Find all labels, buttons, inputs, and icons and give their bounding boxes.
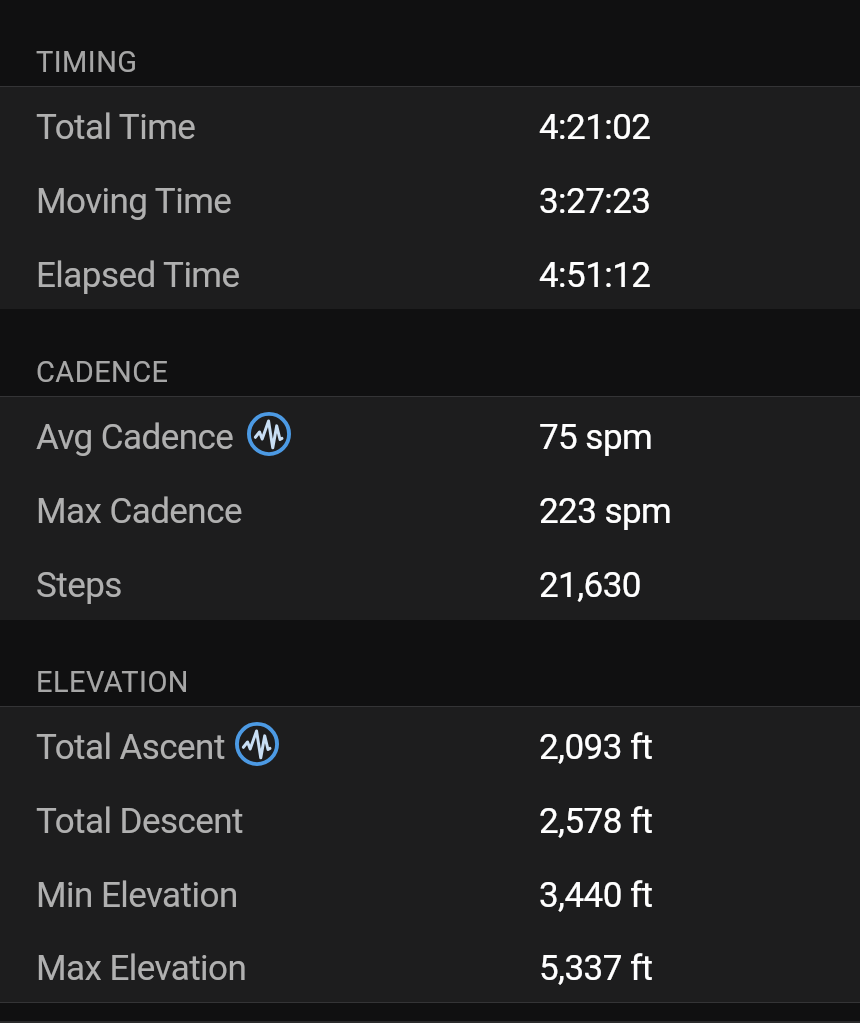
- staticText: Moving Time: [36, 181, 232, 222]
- staticText: 2,093 ft: [539, 727, 653, 768]
- staticText: CADENCE: [36, 355, 169, 389]
- staticText: Total Ascent: [36, 727, 225, 768]
- button[interactable]: Total Ascent: [0, 707, 860, 781]
- button[interactable]: Total Time: [0, 87, 860, 161]
- staticText: TIMING: [36, 45, 138, 79]
- staticText: ELEVATION: [36, 665, 189, 699]
- staticText: Max Elevation: [36, 948, 247, 989]
- staticText: 4:51:12: [539, 255, 651, 296]
- button[interactable]: Max Cadence: [0, 471, 860, 545]
- staticText: 21,630: [539, 565, 641, 606]
- staticText: 75 spm: [539, 417, 653, 458]
- button[interactable]: Min Elevation: [0, 855, 860, 929]
- staticText: 223 spm: [539, 491, 672, 532]
- staticText: Steps: [36, 565, 122, 606]
- staticText: 2,578 ft: [539, 801, 653, 842]
- staticText: 3,440 ft: [539, 875, 653, 916]
- button[interactable]: Steps: [0, 545, 860, 620]
- staticText: 4:21:02: [539, 107, 651, 148]
- other: Sensor data source: [247, 412, 291, 456]
- staticText: Elapsed Time: [36, 255, 240, 296]
- button[interactable]: Max Elevation: [0, 929, 860, 1002]
- staticText: 5,337 ft: [539, 948, 653, 989]
- staticText: Min Elevation: [36, 875, 238, 916]
- button[interactable]: Avg Cadence: [0, 397, 860, 471]
- staticText: Total Time: [36, 107, 196, 148]
- staticText: Total Descent: [36, 801, 243, 842]
- other: Sensor data source: [235, 722, 279, 766]
- staticText: 3:27:23: [539, 181, 651, 222]
- button[interactable]: Moving Time: [0, 161, 860, 235]
- staticText: Max Cadence: [36, 491, 242, 532]
- button[interactable]: Elapsed Time: [0, 235, 860, 309]
- staticText: Avg Cadence: [36, 417, 234, 458]
- button[interactable]: Total Descent: [0, 781, 860, 855]
